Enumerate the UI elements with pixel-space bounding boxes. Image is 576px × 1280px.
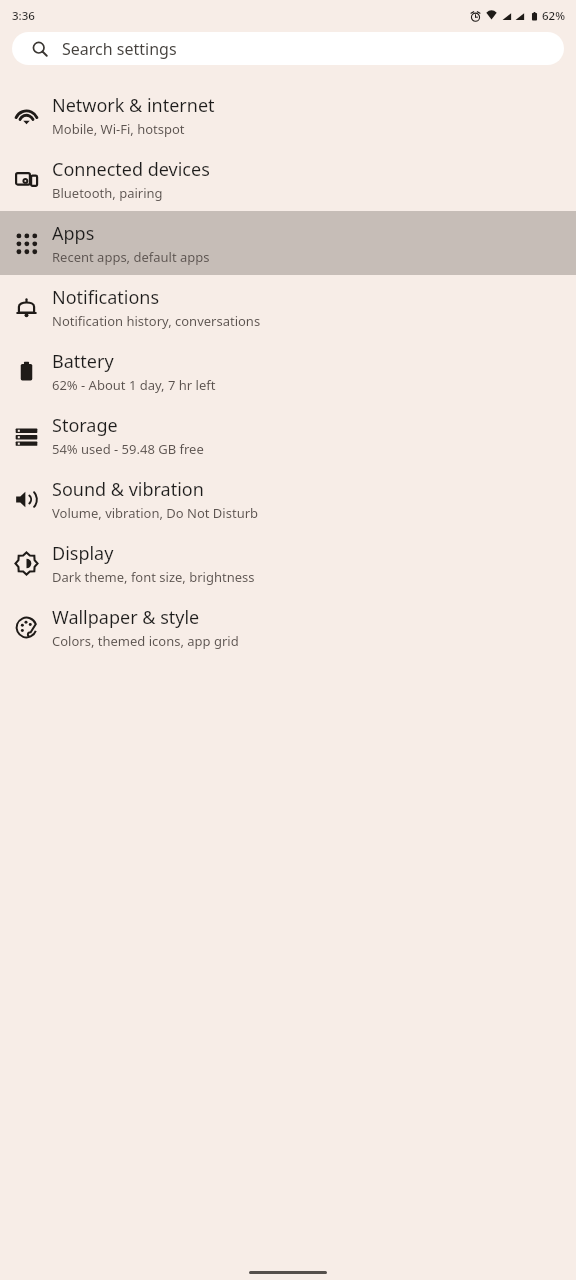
staticText: Sound & vibration <box>52 477 204 502</box>
button[interactable]: Storage <box>0 403 576 467</box>
staticText: Recent apps, default apps <box>52 248 210 266</box>
staticText: Connected devices <box>52 157 210 182</box>
other: Network <box>15 104 38 127</box>
staticText: Search settings <box>62 38 177 60</box>
staticText: Dark theme, font size, brightness <box>52 568 255 586</box>
other: Display <box>15 552 38 575</box>
other: Apps <box>15 232 38 255</box>
staticText: 62% - About 1 day, 7 hr left <box>52 376 216 394</box>
button[interactable]: Battery <box>0 339 576 403</box>
other: Storage <box>15 424 38 447</box>
staticText: Colors, themed icons, app grid <box>52 632 239 650</box>
staticText: Volume, vibration, Do Not Disturb <box>52 504 259 522</box>
staticText: Notification history, conversations <box>52 312 261 330</box>
button[interactable]: Display <box>0 531 576 595</box>
other: Wallpaper and style <box>15 616 38 639</box>
staticText: 54% used - 59.48 GB free <box>52 440 204 458</box>
staticText: Notifications <box>52 285 160 310</box>
staticText: Bluetooth, pairing <box>52 184 163 202</box>
other: Battery <box>15 360 38 383</box>
staticText: Storage <box>52 413 118 438</box>
staticText: Mobile, Wi-Fi, hotspot <box>52 120 185 138</box>
button[interactable]: Sound and vibration <box>0 467 576 531</box>
other: Notifications <box>15 296 38 319</box>
staticText: 3:36 <box>12 8 35 24</box>
staticText: Battery <box>52 349 114 374</box>
staticText: Display <box>52 541 114 566</box>
button[interactable]: Network <box>0 83 576 147</box>
button[interactable]: Notifications <box>0 275 576 339</box>
staticText: Wallpaper & style <box>52 605 200 630</box>
button[interactable]: Apps <box>0 211 576 275</box>
other: Sound and vibration <box>15 488 38 511</box>
staticText: Network & internet <box>52 93 215 118</box>
staticText: 62% <box>542 8 565 24</box>
button[interactable]: Search settings <box>12 32 564 65</box>
button[interactable]: Wallpaper and style <box>0 595 576 659</box>
staticText: Apps <box>52 221 95 246</box>
button[interactable]: Connected devices <box>0 147 576 211</box>
other: Connected devices <box>15 168 38 191</box>
